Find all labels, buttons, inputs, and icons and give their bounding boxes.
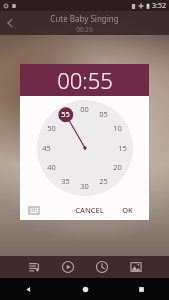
staticText: 06:29	[76, 25, 93, 34]
button[interactable]: Gallery	[126, 257, 146, 277]
staticText: OK	[122, 205, 133, 215]
staticText: 15	[118, 143, 127, 153]
staticText: 55	[61, 109, 70, 119]
staticText: CANCEL	[75, 205, 104, 215]
staticText: 25	[99, 176, 108, 186]
button[interactable]: Timer	[92, 257, 112, 277]
staticText: 10	[113, 123, 122, 133]
button[interactable]: Playlist	[24, 257, 44, 277]
staticText: 45	[42, 143, 51, 153]
staticText: Cute Baby Singing	[50, 13, 119, 24]
button[interactable]: Recents	[113, 278, 169, 300]
staticText: 35	[61, 176, 70, 186]
button[interactable]: Back	[0, 13, 20, 33]
staticText: 30	[80, 181, 89, 191]
staticText: 05	[99, 109, 108, 119]
button[interactable]: Switch to keyboard input	[26, 202, 42, 218]
button[interactable]: Home	[57, 278, 113, 300]
staticText: 00	[80, 104, 89, 114]
button[interactable]: Back	[0, 278, 57, 300]
button[interactable]: Play	[58, 257, 78, 277]
staticText: 3:52	[152, 1, 166, 11]
button[interactable]: OK	[116, 202, 139, 218]
staticText: 40	[47, 162, 56, 172]
button[interactable]: CANCEL	[69, 202, 110, 218]
staticText: 20	[113, 162, 122, 172]
staticText: 50	[47, 123, 56, 133]
staticText: 00:55	[57, 65, 113, 95]
